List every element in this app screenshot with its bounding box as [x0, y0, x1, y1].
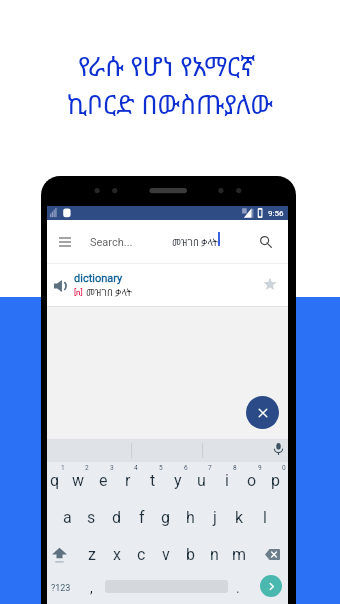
- staticText: l: [263, 508, 267, 527]
- staticText: ,: [90, 580, 93, 596]
- staticText: ?123: [51, 583, 71, 594]
- staticText: s: [87, 508, 96, 527]
- button[interactable]: s: [79, 499, 104, 536]
- staticText: q: [50, 471, 60, 490]
- button[interactable]: 9: [240, 462, 265, 499]
- staticText: g: [161, 508, 170, 527]
- staticText: n: [210, 545, 219, 564]
- staticText: f: [139, 508, 145, 527]
- button[interactable]: Clear: [246, 396, 279, 429]
- staticText: k: [235, 508, 244, 527]
- staticText: 4: [134, 464, 138, 472]
- staticText: c: [137, 545, 146, 564]
- button[interactable]: x: [104, 536, 129, 573]
- button[interactable]: 7: [190, 462, 215, 499]
- staticText: m: [232, 545, 247, 564]
- staticText: መዝገበ ቃላት: [172, 236, 219, 249]
- staticText: i: [225, 471, 229, 490]
- staticText: v: [162, 545, 170, 564]
- button[interactable]: b: [178, 536, 203, 573]
- button[interactable]: 3: [92, 462, 117, 499]
- button[interactable]: 5: [141, 462, 166, 499]
- button[interactable]: ?123: [48, 572, 74, 604]
- button[interactable]: Shift: [47, 536, 72, 573]
- button[interactable]: 2: [67, 462, 92, 499]
- staticText: t: [150, 471, 156, 490]
- staticText: o: [247, 471, 257, 490]
- staticText: የራሱ የሆነ የአማርኛ: [78, 48, 255, 83]
- button[interactable]: 1: [43, 462, 68, 499]
- staticText: 5: [159, 464, 163, 472]
- staticText: w: [72, 471, 85, 490]
- button[interactable]: g: [153, 499, 178, 536]
- button[interactable]: ,: [81, 572, 101, 604]
- button[interactable]: h: [178, 499, 203, 536]
- staticText: 2: [85, 464, 89, 472]
- staticText: 9: [258, 464, 262, 472]
- staticText: d: [112, 508, 122, 527]
- staticText: 3: [110, 464, 114, 472]
- button[interactable]: k: [227, 499, 252, 536]
- staticText: y: [174, 471, 182, 490]
- button[interactable]: 6: [166, 462, 191, 499]
- staticText: b: [186, 545, 195, 564]
- button[interactable]: f: [129, 499, 154, 536]
- button[interactable]: n: [202, 536, 227, 573]
- staticText: 7: [208, 464, 212, 472]
- button[interactable]: 8: [215, 462, 240, 499]
- staticText: 6: [184, 464, 188, 472]
- button[interactable]: Favorite: [259, 273, 281, 295]
- button[interactable]: c: [129, 536, 154, 573]
- button[interactable]: Backspace: [260, 536, 285, 573]
- staticText: x: [113, 545, 121, 564]
- staticText: r: [125, 471, 131, 490]
- staticText: Search...: [90, 236, 133, 249]
- staticText: e: [99, 471, 108, 490]
- staticText: 1: [61, 464, 65, 472]
- staticText: መዝገበ ቃላት: [86, 286, 133, 299]
- button[interactable]: 0: [264, 462, 289, 499]
- staticText: 0: [282, 464, 286, 472]
- button[interactable]: Menu: [47, 220, 288, 264]
- button[interactable]: Pronounce: [49, 275, 71, 297]
- staticText: z: [88, 545, 96, 564]
- button[interactable]: Enter: [260, 575, 282, 597]
- staticText: [n]: [74, 288, 83, 297]
- staticText: a: [63, 508, 72, 527]
- button[interactable]: z: [79, 536, 104, 573]
- button[interactable]: a: [55, 499, 80, 536]
- staticText: u: [197, 471, 206, 490]
- button[interactable]: Menu: [55, 232, 75, 252]
- staticText: p: [271, 471, 280, 490]
- button[interactable]: l: [252, 499, 277, 536]
- button[interactable]: 4: [116, 462, 141, 499]
- staticText: 9:56: [268, 209, 284, 218]
- staticText: .: [236, 580, 240, 596]
- staticText: ኪቦርድ በውስጡያለው: [67, 86, 273, 121]
- staticText: h: [186, 508, 195, 527]
- button[interactable]: Pronounce: [47, 264, 288, 306]
- button[interactable]: j: [202, 499, 227, 536]
- button[interactable]: .: [228, 572, 248, 604]
- staticText: j: [213, 508, 217, 527]
- staticText: dictionary: [74, 272, 123, 285]
- button[interactable]: v: [153, 536, 178, 573]
- button[interactable]: m: [227, 536, 252, 573]
- staticText: 8: [233, 464, 237, 472]
- button[interactable]: d: [104, 499, 129, 536]
- button[interactable]: Voice input: [268, 439, 288, 459]
- button[interactable]: Search: [256, 232, 276, 252]
